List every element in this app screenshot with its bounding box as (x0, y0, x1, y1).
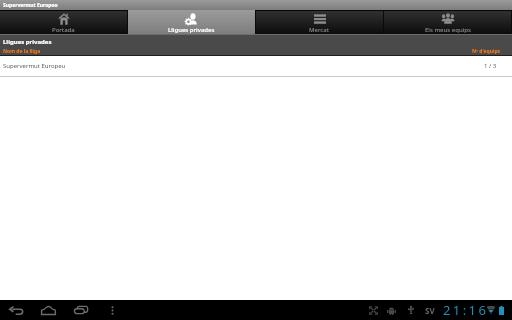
button[interactable]: Mercat (256, 10, 383, 34)
staticText: Supervermut Europeo (3, 2, 58, 9)
staticText: Nº d'equips (472, 48, 501, 55)
button[interactable]: Recent apps (65, 300, 97, 320)
staticText: SV (425, 305, 435, 316)
button[interactable]: Back (0, 300, 32, 320)
staticText: Lligues privades (168, 26, 215, 34)
staticText: 1 / 3 (484, 62, 497, 70)
button[interactable]: Home (32, 300, 65, 320)
staticText: Mercat (309, 26, 330, 34)
button[interactable]: More options (97, 300, 127, 320)
button[interactable]: Lligues privades (128, 10, 255, 34)
staticText: Nom de la lliga (3, 48, 41, 55)
staticText: 21:16 (443, 301, 489, 319)
staticText: Lligues privades (3, 38, 52, 46)
staticText: Portada (52, 26, 75, 34)
staticText: Els meus equips (425, 26, 471, 34)
button[interactable]: Portada (0, 10, 127, 34)
button[interactable]: Supervermut Europeu (0, 56, 512, 76)
staticText: Supervermut Europeu (3, 62, 66, 70)
button[interactable]: Els meus equips (384, 10, 511, 34)
